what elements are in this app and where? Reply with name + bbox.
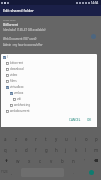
staticText: l (85, 147, 87, 153)
staticText: virtualbox (10, 85, 24, 89)
staticText: Edit shared folder (3, 8, 34, 13)
staticText: 14:54 (91, 1, 99, 5)
button[interactable]: g (41, 144, 51, 155)
staticText: / (7, 55, 9, 59)
staticText: m (94, 147, 99, 153)
button[interactable]: ?123 (0, 166, 9, 178)
button[interactable]: webdocument (1, 108, 97, 114)
button[interactable]: OK (86, 117, 93, 123)
button[interactable]: z (11, 133, 21, 144)
button[interactable]: f (31, 144, 41, 155)
button[interactable]: Backspace (90, 155, 101, 166)
button[interactable]: c (35, 155, 46, 166)
button[interactable]: webhosting (1, 102, 97, 108)
staticText: ?123 (1, 170, 8, 174)
staticText: /dev/sda1 (145.47 GB available) (3, 28, 46, 32)
button[interactable]: j (61, 144, 71, 155)
button[interactable]: bittorrent (1, 60, 97, 66)
staticText: t (45, 136, 47, 142)
staticText: x (28, 158, 31, 164)
staticText: o (85, 136, 88, 142)
staticText: video (10, 73, 18, 77)
staticText: webhosting (14, 103, 30, 107)
button[interactable]: x (24, 155, 35, 166)
staticText: a (4, 136, 7, 142)
staticText: films (10, 79, 17, 83)
staticText: s (15, 147, 18, 153)
button[interactable]: Enter (89, 170, 94, 175)
button[interactable]: r (31, 133, 41, 144)
button[interactable]: h (51, 144, 61, 155)
button[interactable]: l (81, 144, 91, 155)
staticText: bittorrent (10, 61, 24, 65)
staticText: y (55, 136, 58, 142)
staticText: vmbox (14, 91, 24, 95)
button[interactable]: CANCEL (68, 117, 82, 123)
staticText: i (75, 136, 77, 142)
staticText: Folder name (3, 19, 16, 22)
button[interactable]: k (71, 144, 81, 155)
staticText: q (4, 147, 7, 153)
staticText: f (35, 147, 37, 153)
staticText: webdocument (10, 109, 30, 113)
button[interactable]: n (68, 155, 79, 166)
staticText: p (95, 136, 98, 142)
staticText: c (39, 158, 42, 164)
staticText: g (45, 147, 48, 153)
button[interactable]: u (61, 133, 71, 144)
button[interactable]: o (81, 133, 91, 144)
staticText: v (50, 158, 53, 164)
button[interactable]: virtualbox (1, 84, 97, 90)
staticText: ' (84, 158, 85, 164)
button[interactable]: films (1, 78, 97, 84)
button[interactable]: b (57, 155, 68, 166)
button[interactable]: Account (91, 34, 96, 39)
button[interactable]: t (41, 133, 51, 144)
staticText: BitTorrent (3, 23, 19, 27)
staticText: Admin : my how to access/offer (3, 43, 43, 47)
staticText: e (25, 136, 28, 142)
staticText: u (65, 136, 68, 142)
button[interactable]: vdi (1, 96, 97, 102)
button[interactable]: y (51, 133, 61, 144)
staticText: b (61, 158, 64, 164)
button[interactable]: e (21, 133, 31, 144)
staticText: download (10, 67, 24, 71)
staticText: r (35, 136, 37, 142)
button[interactable]: q (0, 144, 11, 155)
button[interactable]: / (1, 54, 97, 60)
staticText: k (75, 147, 78, 153)
staticText: j (65, 147, 67, 153)
button[interactable]: m (91, 144, 101, 155)
staticText: , (11, 170, 13, 175)
staticText: z (15, 136, 18, 142)
button[interactable]: d (21, 144, 31, 155)
button[interactable]: v (46, 155, 57, 166)
staticText: h (55, 147, 58, 153)
button[interactable]: vmbox (1, 90, 97, 96)
button[interactable]: s (11, 144, 21, 155)
staticText: n (72, 158, 75, 164)
button[interactable]: Shift (0, 155, 12, 166)
staticText: d (25, 147, 28, 153)
staticText: vdi (17, 97, 21, 101)
staticText: w (16, 158, 20, 164)
button[interactable]: w (12, 155, 24, 166)
button[interactable]: a (0, 133, 11, 144)
button[interactable]: download (1, 66, 97, 72)
staticText: Web Document (937 used) (3, 37, 37, 41)
button[interactable]: video (1, 72, 97, 78)
button[interactable]: p (91, 133, 101, 144)
